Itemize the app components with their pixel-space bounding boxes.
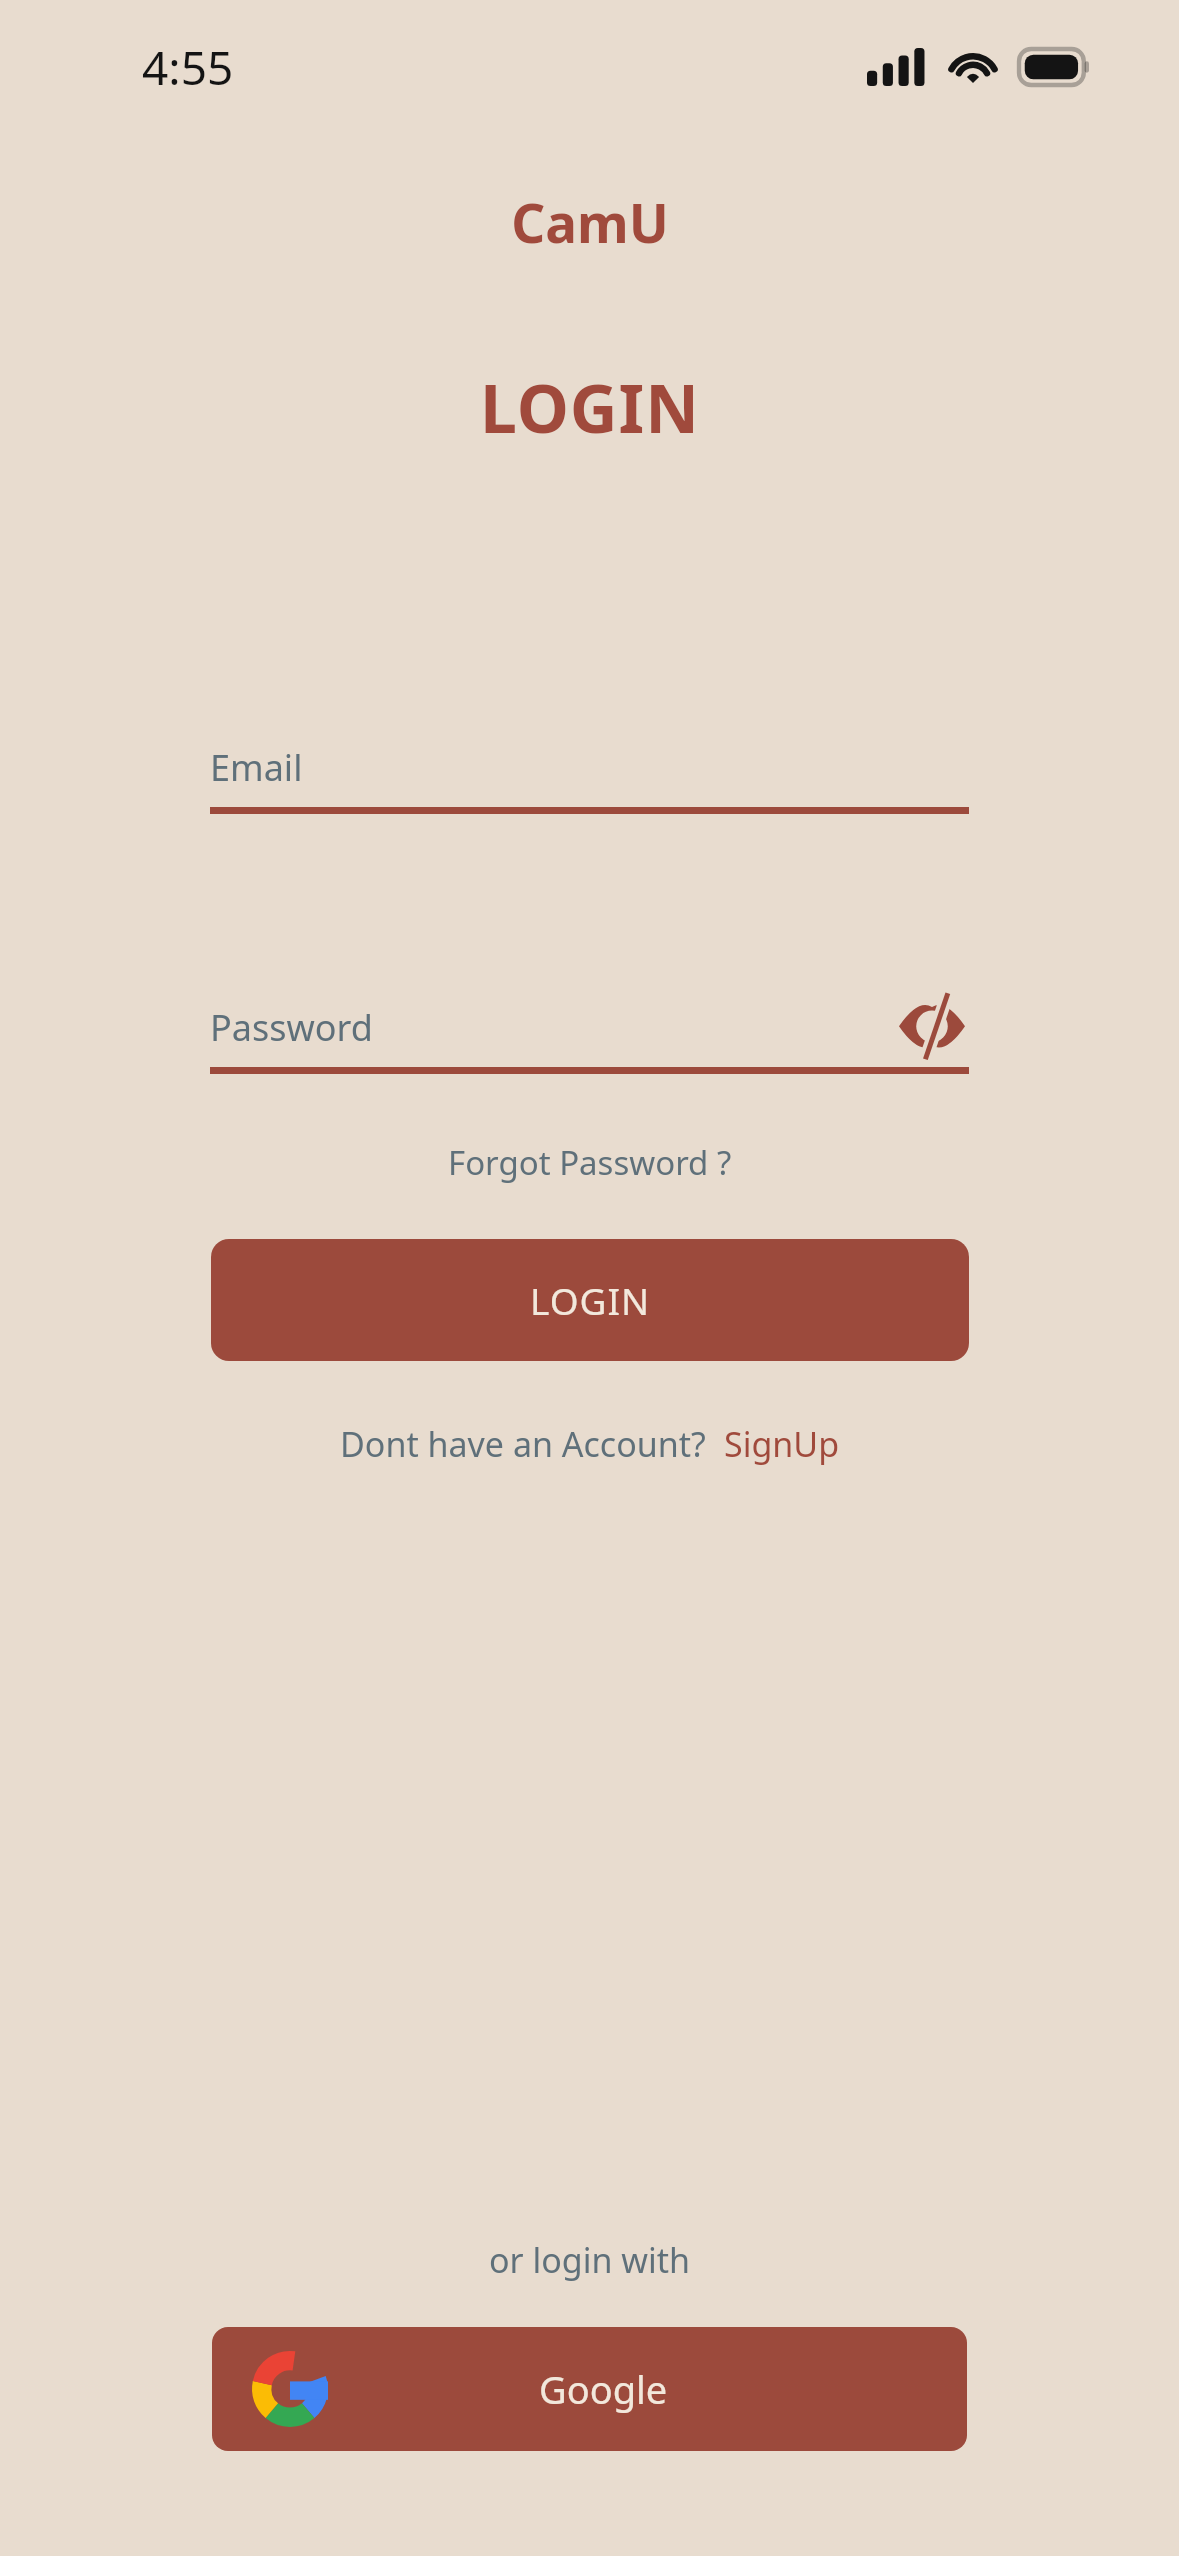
button[interactable]: SignUp <box>724 1421 840 1467</box>
staticText: Password <box>210 1003 373 1052</box>
staticText: 4:55 <box>142 36 234 99</box>
staticText: Email <box>210 743 303 792</box>
staticText: LOGIN <box>480 362 700 452</box>
button[interactable]: Toggle password visibility <box>895 988 969 1062</box>
staticText: Google <box>539 2363 668 2415</box>
button[interactable]: Email <box>210 702 969 814</box>
button[interactable]: Forgot Password ? <box>438 1134 742 1191</box>
button[interactable]: Password <box>210 962 969 1074</box>
staticText: SignUp <box>724 1421 840 1467</box>
staticText: LOGIN <box>530 1275 651 1325</box>
button[interactable]: LOGIN <box>211 1239 969 1361</box>
staticText: Dont have an Account? <box>340 1421 706 1467</box>
staticText: or login with <box>489 2237 691 2283</box>
staticText: Forgot Password ? <box>448 1140 732 1185</box>
staticText: CamU <box>511 186 669 258</box>
button[interactable]: Google <box>212 2327 967 2451</box>
